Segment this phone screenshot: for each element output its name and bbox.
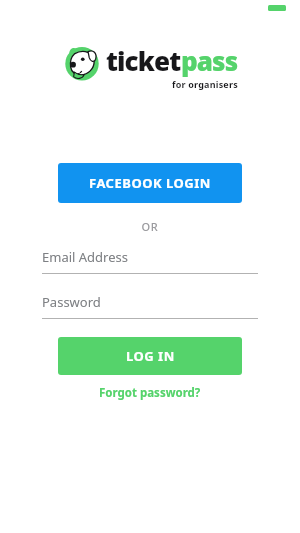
button[interactable]: Password	[42, 293, 258, 319]
staticText: Password	[42, 293, 101, 311]
button[interactable]: Forgot password?	[91, 382, 209, 404]
staticText: Forgot password?	[99, 385, 201, 401]
staticText: pass	[181, 43, 238, 78]
staticText: FACEBOOK LOGIN	[89, 174, 211, 192]
button[interactable]: LOG IN	[58, 337, 242, 375]
staticText: OR	[0, 219, 300, 234]
staticText: ticket	[106, 43, 181, 78]
other: ticketpass logo	[63, 44, 101, 82]
staticText: for organisers	[172, 78, 238, 90]
button[interactable]: Email Address	[42, 248, 258, 274]
button[interactable]: FACEBOOK LOGIN	[58, 163, 242, 203]
staticText: Email Address	[42, 248, 128, 266]
staticText: LOG IN	[126, 347, 175, 365]
